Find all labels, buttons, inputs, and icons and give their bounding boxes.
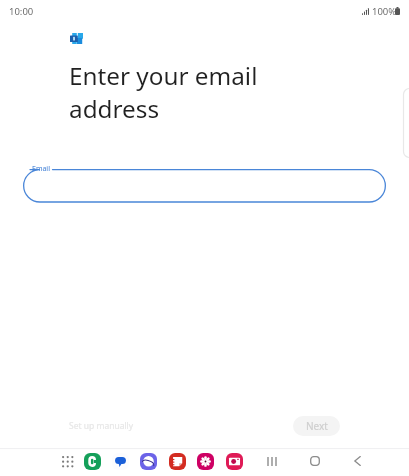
- staticText: Next: [306, 419, 328, 433]
- button[interactable]: Gallery: [197, 453, 214, 470]
- button[interactable]: Next: [293, 416, 340, 436]
- staticText: Set up manually: [69, 420, 134, 432]
- button[interactable]: Phone: [84, 453, 101, 470]
- button[interactable]: Notes: [169, 453, 186, 470]
- staticText: Enter your email address: [69, 59, 258, 125]
- button[interactable]: Home: [305, 451, 325, 471]
- staticText: 100%: [372, 5, 397, 18]
- button[interactable]: Back: [347, 451, 367, 471]
- button[interactable]: Internet: [140, 453, 157, 470]
- button[interactable]: Messages: [112, 453, 129, 470]
- staticText: 10:00: [9, 5, 34, 18]
- button[interactable]: Recents: [262, 451, 282, 471]
- button[interactable]: Set up manually: [62, 416, 141, 436]
- staticText: Email: [32, 164, 50, 174]
- button[interactable]: Camera: [226, 453, 243, 470]
- button[interactable]: Apps: [58, 452, 78, 472]
